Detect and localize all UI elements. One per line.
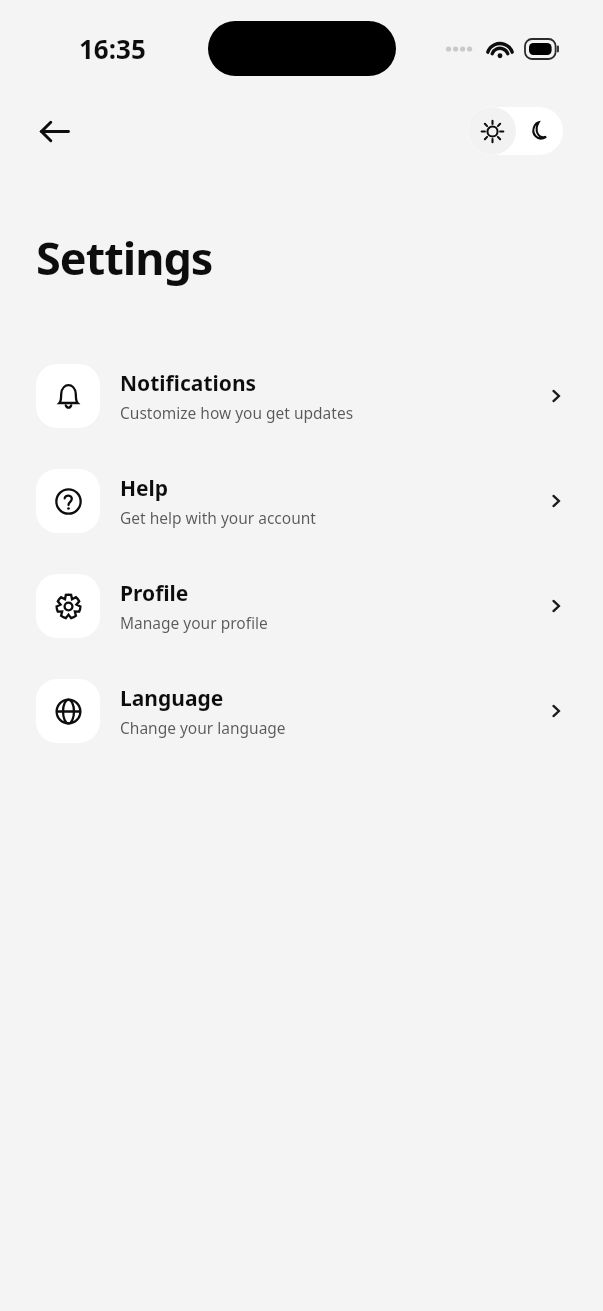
staticText: 16:35 bbox=[79, 31, 146, 66]
button[interactable]: Light theme bbox=[468, 107, 516, 155]
button[interactable]: Help bbox=[0, 469, 603, 533]
staticText: Profile bbox=[120, 579, 189, 608]
staticText: Settings bbox=[36, 227, 213, 288]
button[interactable]: Back bbox=[28, 105, 80, 157]
button[interactable]: Profile bbox=[0, 574, 603, 638]
staticText: Get help with your account bbox=[120, 507, 316, 528]
staticText: Manage your profile bbox=[120, 612, 268, 633]
button[interactable]: Notifications bbox=[0, 364, 603, 428]
staticText: Notifications bbox=[120, 369, 257, 398]
staticText: Change your language bbox=[120, 717, 286, 738]
staticText: Customize how you get updates bbox=[120, 402, 354, 423]
staticText: Help bbox=[120, 474, 169, 503]
button[interactable]: Language bbox=[0, 679, 603, 743]
staticText: Language bbox=[120, 684, 224, 713]
button[interactable]: Dark theme bbox=[516, 108, 563, 155]
